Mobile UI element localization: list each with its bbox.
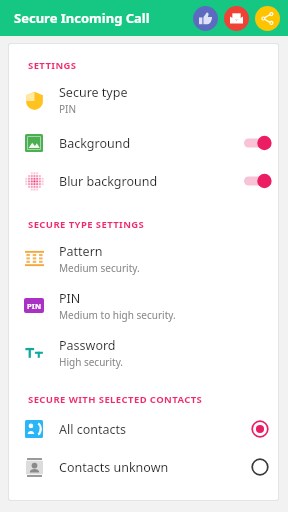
staticText: Blur background [59, 173, 242, 190]
button[interactable]: Pattern [9, 235, 278, 282]
staticText: Secure type [59, 84, 128, 101]
button[interactable]: Background [9, 124, 278, 162]
staticText: SECURE WITH SELECTED CONTACTS [28, 393, 203, 406]
button[interactable]: Secure type [9, 76, 278, 124]
staticText: Medium security. [59, 261, 140, 275]
staticText: PIN [59, 102, 77, 116]
button[interactable]: Password [9, 329, 278, 376]
staticText: SECURE TYPE SETTINGS [28, 218, 145, 231]
button[interactable]: Contacts unknown [9, 448, 278, 486]
staticText: Background [59, 135, 242, 152]
staticText: PIN [59, 290, 81, 307]
staticText: Medium to high security. [59, 308, 176, 322]
staticText: Contacts unknown [59, 459, 251, 476]
staticText: SETTINGS [28, 59, 77, 72]
button[interactable]: All contacts [9, 410, 278, 448]
staticText: Password [59, 337, 116, 354]
staticText: PIN [27, 301, 42, 311]
staticText: High security. [59, 355, 124, 369]
button[interactable]: Mail [224, 6, 249, 31]
staticText: Pattern [59, 243, 103, 260]
button[interactable]: Share [255, 6, 280, 31]
button[interactable]: Like [193, 6, 218, 31]
staticText: Secure Incoming Call [14, 9, 193, 27]
staticText: All contacts [59, 421, 251, 438]
button[interactable]: PIN [9, 282, 278, 329]
button[interactable]: Blur background [9, 162, 278, 200]
